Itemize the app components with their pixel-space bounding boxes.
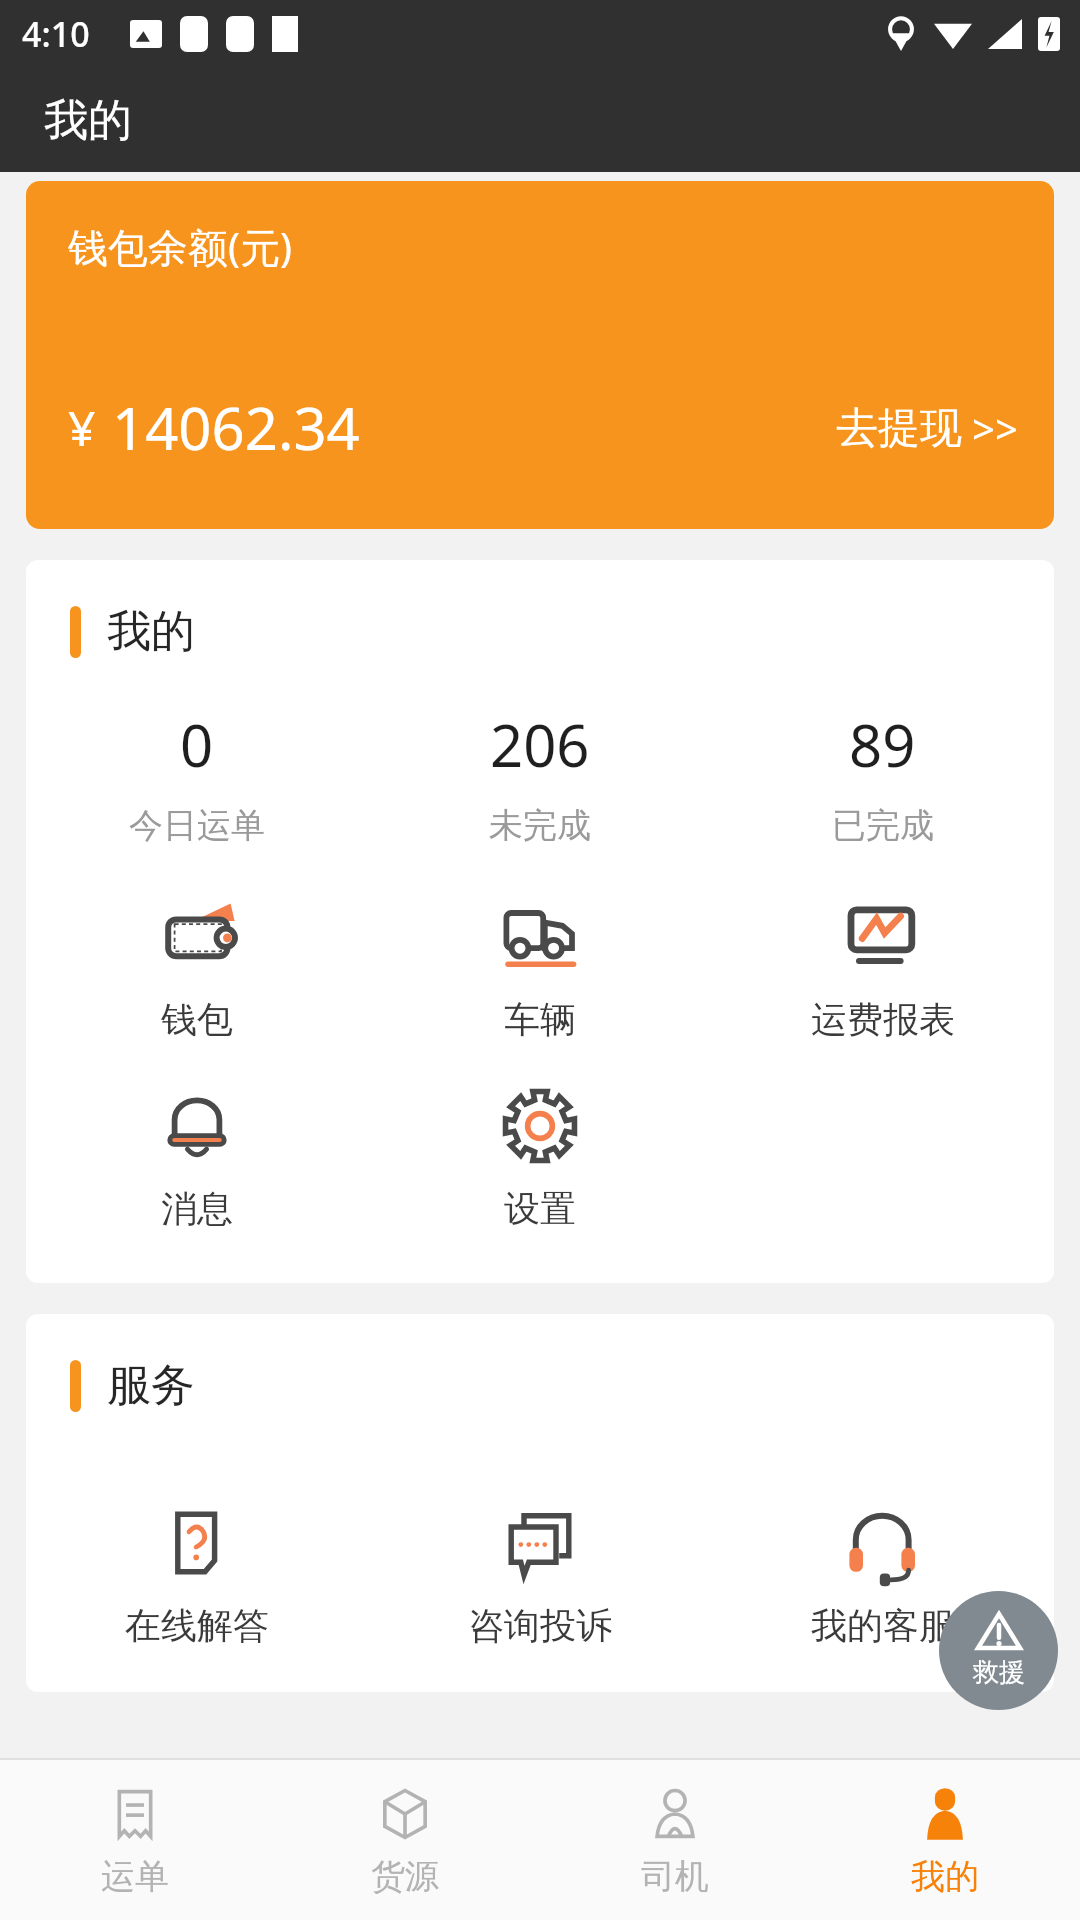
button[interactable]: 运单 — [0, 1760, 270, 1920]
staticText: 已完成 — [832, 804, 934, 847]
staticText: 89 — [849, 705, 916, 784]
staticText: 4:10 — [22, 11, 90, 57]
staticText: 14062.34 — [112, 388, 360, 467]
button[interactable]: 设置 — [368, 1084, 711, 1231]
button[interactable]: 司机 — [540, 1760, 810, 1920]
staticText: 设置 — [504, 1186, 576, 1231]
staticText: 我的 — [911, 1855, 979, 1898]
staticText: 服务 — [107, 1358, 195, 1413]
button[interactable]: 0 — [26, 705, 368, 847]
staticText: 在线解答 — [125, 1603, 269, 1648]
staticText: 司机 — [641, 1855, 709, 1898]
staticText: 运单 — [101, 1855, 169, 1898]
button[interactable]: 去提现 — [836, 401, 1018, 455]
button[interactable]: 运费报表 — [711, 895, 1054, 1042]
button[interactable]: 咨询投诉 — [368, 1501, 711, 1648]
staticText: 我的客服 — [811, 1603, 955, 1648]
button[interactable]: 89 — [711, 705, 1054, 847]
staticText: 我的 — [107, 604, 195, 659]
button[interactable]: 我的客服 — [711, 1501, 1054, 1648]
button[interactable]: 钱包余额(元) — [26, 181, 1054, 529]
staticText: 未完成 — [489, 804, 591, 847]
button[interactable]: 206 — [368, 705, 711, 847]
staticText: 消息 — [161, 1186, 233, 1231]
staticText: 0 — [180, 705, 214, 784]
staticText: 去提现 — [836, 402, 962, 455]
staticText: 我的 — [44, 93, 132, 148]
button[interactable]: 货源 — [270, 1760, 540, 1920]
staticText: 货源 — [371, 1855, 439, 1898]
button[interactable]: 在线解答 — [26, 1501, 368, 1648]
staticText: 钱包 — [161, 997, 233, 1042]
button[interactable]: 钱包 — [26, 895, 368, 1042]
staticText: >> — [972, 401, 1018, 455]
staticText: 运费报表 — [811, 997, 955, 1042]
button[interactable]: 车辆 — [368, 895, 711, 1042]
staticText: 钱包余额(元) — [68, 219, 292, 274]
button[interactable]: 我的 — [810, 1760, 1080, 1920]
staticText: 206 — [490, 705, 590, 784]
button[interactable]: 消息 — [26, 1084, 368, 1231]
staticText: 咨询投诉 — [468, 1603, 612, 1648]
staticText: ¥ — [68, 395, 96, 460]
staticText: 今日运单 — [129, 804, 265, 847]
staticText: 救援 — [973, 1656, 1025, 1689]
button[interactable]: 救援 — [939, 1591, 1058, 1710]
staticText: 车辆 — [504, 997, 576, 1042]
